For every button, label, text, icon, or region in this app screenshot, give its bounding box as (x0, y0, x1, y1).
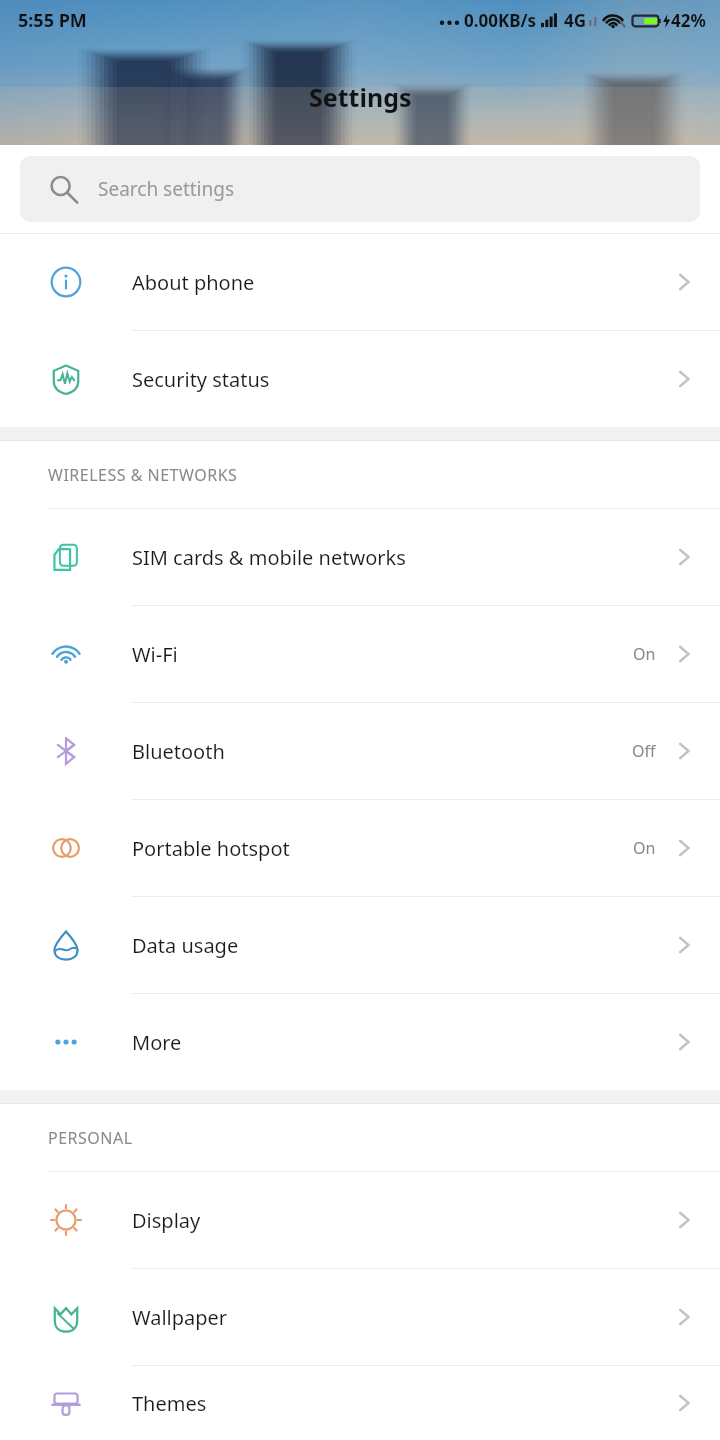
staticText: Wallpaper (132, 1304, 670, 1331)
staticText: Display (132, 1207, 670, 1234)
staticText: SIM cards & mobile networks (132, 544, 670, 571)
staticText: 4G (564, 9, 587, 32)
button[interactable]: Data usage (0, 897, 720, 993)
button[interactable]: Wallpaper (0, 1269, 720, 1365)
staticText: Search settings (98, 176, 235, 202)
staticText: More (132, 1029, 670, 1056)
staticText: On (633, 837, 656, 859)
staticText: Data usage (132, 932, 670, 959)
staticText: 42% (671, 9, 706, 32)
staticText: About phone (132, 269, 670, 296)
staticText: On (633, 643, 656, 665)
staticText: 0.00KB/s (464, 9, 537, 32)
staticText: Bluetooth (132, 738, 632, 765)
staticText: Themes (132, 1390, 670, 1417)
button[interactable]: Themes (0, 1366, 720, 1440)
staticText: WIRELESS & NETWORKS (48, 464, 238, 486)
staticText: Wi-Fi (132, 641, 633, 668)
button[interactable]: More (0, 994, 720, 1090)
button[interactable]: Wi-Fi (0, 606, 720, 702)
staticText: 5:55 PM (18, 8, 87, 33)
button[interactable]: Bluetooth (0, 703, 720, 799)
staticText: Settings (309, 80, 412, 114)
staticText: PERSONAL (48, 1127, 133, 1149)
button[interactable]: Portable hotspot (0, 800, 720, 896)
staticText: Portable hotspot (132, 835, 633, 862)
staticText: Security status (132, 366, 670, 393)
button[interactable]: Search settings (20, 156, 700, 222)
staticText: Off (632, 740, 656, 762)
button[interactable]: Display (0, 1172, 720, 1268)
button[interactable]: Security status (0, 331, 720, 427)
button[interactable]: About phone (0, 234, 720, 330)
button[interactable]: SIM cards & mobile networks (0, 509, 720, 605)
